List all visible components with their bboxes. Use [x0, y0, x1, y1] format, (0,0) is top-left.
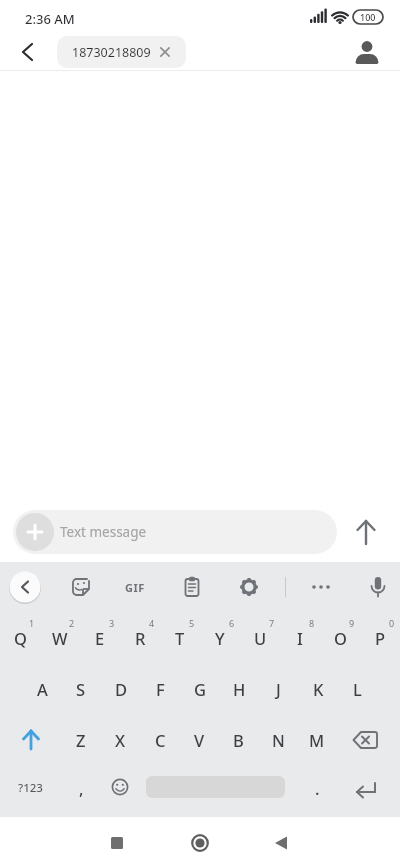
- staticText: GIF: [125, 580, 145, 595]
- staticText: ?123: [18, 780, 43, 796]
- button[interactable]: [9, 571, 41, 603]
- staticText: 4: [149, 617, 155, 629]
- staticText: J: [276, 678, 281, 700]
- button[interactable]: Q: [0, 612, 40, 663]
- staticText: I: [297, 627, 303, 649]
- staticText: 2: [69, 617, 75, 629]
- staticText: E: [95, 627, 105, 649]
- button[interactable]: Z: [61, 714, 101, 765]
- button[interactable]: B: [218, 714, 258, 765]
- staticText: 0: [389, 617, 395, 629]
- button[interactable]: GIF: [117, 569, 153, 605]
- staticText: .: [315, 777, 320, 799]
- staticText: Y: [215, 627, 225, 649]
- staticText: B: [233, 729, 244, 751]
- button[interactable]: [303, 569, 339, 605]
- button[interactable]: [63, 569, 99, 605]
- button[interactable]: W: [40, 612, 80, 663]
- button[interactable]: [103, 829, 131, 857]
- button[interactable]: C: [140, 714, 180, 765]
- staticText: D: [115, 678, 128, 700]
- staticText: 3: [109, 617, 115, 629]
- button[interactable]: G: [180, 663, 220, 714]
- button[interactable]: V: [179, 714, 219, 765]
- button[interactable]: Y: [200, 612, 240, 663]
- button[interactable]: A: [22, 663, 62, 714]
- button[interactable]: [231, 569, 267, 605]
- staticText: P: [375, 627, 386, 649]
- button[interactable]: [186, 829, 214, 857]
- button[interactable]: Text message: [13, 510, 337, 554]
- staticText: 2:36 AM: [25, 10, 75, 28]
- button[interactable]: R: [120, 612, 160, 663]
- button[interactable]: P: [360, 612, 400, 663]
- button[interactable]: D: [101, 663, 141, 714]
- staticText: 7: [269, 617, 275, 629]
- button[interactable]: [348, 514, 384, 550]
- staticText: N: [272, 729, 285, 751]
- staticText: V: [194, 729, 205, 751]
- button[interactable]: K: [298, 663, 338, 714]
- button[interactable]: I: [280, 612, 320, 663]
- button[interactable]: O: [320, 612, 360, 663]
- staticText: 5: [189, 617, 195, 629]
- button[interactable]: [351, 36, 383, 68]
- staticText: C: [155, 729, 166, 751]
- button[interactable]: S: [61, 663, 101, 714]
- button[interactable]: [16, 513, 54, 551]
- staticText: 1: [29, 617, 35, 629]
- button[interactable]: F: [140, 663, 180, 714]
- staticText: H: [233, 678, 246, 700]
- staticText: Z: [76, 729, 86, 751]
- staticText: W: [52, 627, 68, 649]
- staticText: 100: [360, 11, 376, 23]
- staticText: X: [115, 729, 126, 751]
- button[interactable]: [13, 38, 41, 66]
- button[interactable]: U: [240, 612, 280, 663]
- button[interactable]: [342, 714, 386, 765]
- staticText: 9: [349, 617, 355, 629]
- staticText: A: [37, 678, 48, 700]
- button[interactable]: .: [297, 763, 337, 813]
- staticText: U: [254, 627, 267, 649]
- button[interactable]: [98, 763, 142, 813]
- button[interactable]: [267, 829, 295, 857]
- staticText: Q: [14, 627, 27, 649]
- button[interactable]: 18730218809: [57, 36, 186, 68]
- staticText: K: [313, 678, 324, 700]
- staticText: T: [175, 627, 185, 649]
- staticText: M: [309, 729, 325, 751]
- staticText: F: [156, 678, 165, 700]
- button[interactable]: [342, 763, 386, 813]
- button[interactable]: T: [160, 612, 200, 663]
- button[interactable]: N: [258, 714, 298, 765]
- staticText: R: [135, 627, 146, 649]
- button[interactable]: E: [80, 612, 120, 663]
- staticText: Text message: [60, 523, 147, 541]
- button[interactable]: [360, 569, 396, 605]
- button[interactable]: X: [100, 714, 140, 765]
- button[interactable]: L: [337, 663, 377, 714]
- staticText: L: [353, 678, 362, 700]
- staticText: 18730218809: [72, 44, 151, 61]
- staticText: G: [194, 678, 206, 700]
- button[interactable]: ?123: [8, 763, 53, 813]
- button[interactable]: H: [219, 663, 259, 714]
- button[interactable]: J: [258, 663, 298, 714]
- button[interactable]: [9, 714, 53, 765]
- staticText: 8: [309, 617, 315, 629]
- staticText: ,: [79, 777, 84, 799]
- button[interactable]: [174, 569, 210, 605]
- button[interactable]: ,: [61, 763, 101, 813]
- staticText: O: [334, 627, 347, 649]
- staticText: S: [76, 678, 86, 700]
- staticText: 6: [229, 617, 235, 629]
- button[interactable]: M: [297, 714, 337, 765]
